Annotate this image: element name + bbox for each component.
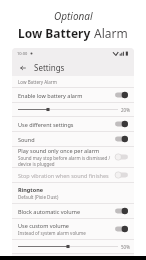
- button[interactable]: 20%: [12, 103, 134, 116]
- staticText: Use custom volume: [18, 222, 69, 229]
- staticText: 20%: [121, 107, 130, 113]
- staticText: Alarm: [94, 25, 128, 41]
- staticText: Stop vibration when sound finishes: [18, 172, 109, 179]
- button[interactable]: Ringtone: [12, 183, 134, 203]
- button[interactable]: Sound: [12, 132, 134, 146]
- button[interactable]: Play sound only once per alarm: [12, 147, 134, 167]
- button[interactable]: Use different settings: [12, 117, 134, 131]
- staticText: Low Battery Alarm: [18, 79, 57, 85]
- button[interactable]: Block automatic volume: [12, 204, 134, 218]
- staticText: Sound: [18, 136, 35, 143]
- staticText: Play sound only once per alarm: [18, 147, 100, 154]
- staticText: 10:00: [17, 51, 28, 56]
- button[interactable]: Back: [17, 62, 29, 74]
- staticText: Low Battery: [18, 25, 94, 41]
- staticText: 50%: [121, 244, 130, 250]
- staticText: Settings: [34, 62, 65, 73]
- button[interactable]: Enable low battery alarm: [12, 88, 134, 102]
- button[interactable]: 50%: [12, 240, 134, 253]
- staticText: Block automatic volume: [18, 208, 81, 215]
- button[interactable]: Stop vibration when sound finishes: [12, 168, 134, 182]
- button[interactable]: Use custom volume: [12, 219, 134, 239]
- staticText: Sound may stop before alarm is dismissed…: [18, 155, 111, 167]
- staticText: Use different settings: [18, 121, 74, 128]
- staticText: Optional: [54, 9, 93, 23]
- staticText: Instead of system alarm volume: [18, 230, 86, 236]
- staticText: Ringtone: [18, 186, 43, 193]
- staticText: Default (Pixie Dust): [18, 194, 59, 200]
- staticText: Enable low battery alarm: [18, 92, 83, 99]
